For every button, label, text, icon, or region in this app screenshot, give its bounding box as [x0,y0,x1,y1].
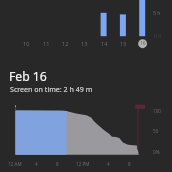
staticText: 8 [56,161,59,167]
button[interactable]: Feb 13 usage [75,2,93,48]
staticText: 5 h [153,9,161,16]
staticText: 8 [128,161,131,167]
staticText: 12 AM [8,161,22,167]
button[interactable]: Battery level chart for Feb 16 [6,100,166,168]
staticText: 10 [23,40,30,47]
staticText: 11 [43,40,50,47]
staticText: Screen on time: 2 h 49 m [10,84,93,94]
staticText: Feb 16 [9,68,47,85]
button[interactable]: Feb 14 usage [95,2,113,48]
button[interactable]: Feb 12 usage [56,2,74,48]
staticText: 4 [35,161,38,167]
staticText: 0 h [154,32,162,39]
staticText: 0% [153,149,160,155]
staticText: 14 [101,40,108,47]
staticText: 100 [153,108,161,114]
staticText: 50 [153,128,159,134]
staticText: 12 PM [76,161,90,167]
staticText: 16 [140,40,146,47]
button[interactable]: Feb 16 usage [133,2,151,48]
staticText: 13 [81,40,88,47]
staticText: 12 [62,40,69,47]
button[interactable]: Feb 11 usage [37,2,55,48]
button[interactable]: Feb 10 usage [17,2,35,48]
button[interactable]: Feb 15 usage [114,2,132,48]
staticText: 4 [107,161,110,167]
staticText: 15 [120,40,127,47]
